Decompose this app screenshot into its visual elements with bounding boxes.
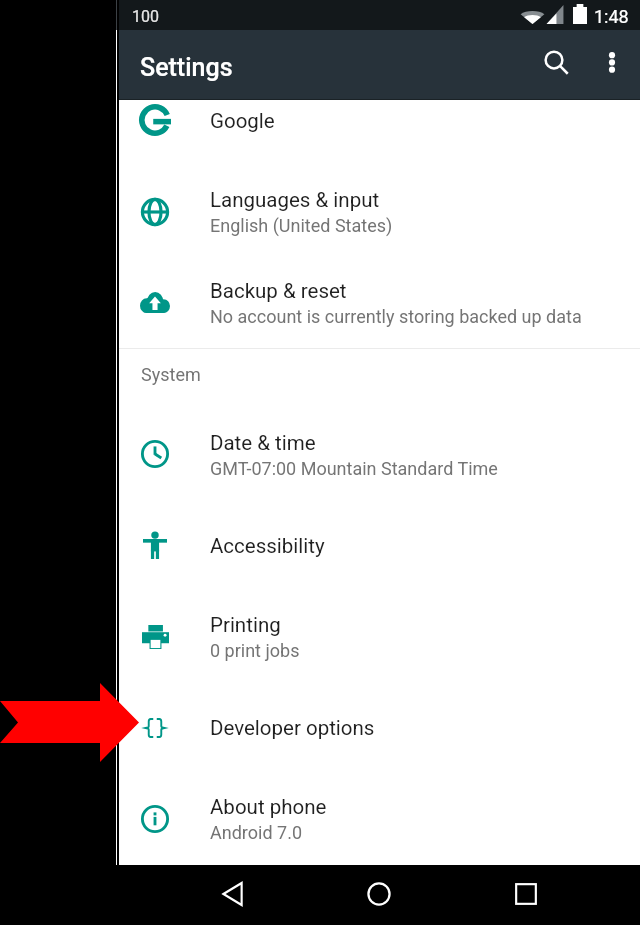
staticText: 0 print jobs	[210, 640, 300, 661]
button[interactable]	[119, 165, 640, 256]
button[interactable]	[119, 256, 640, 347]
staticText: Backup & reset	[210, 279, 347, 303]
staticText: No account is currently storing backed u…	[210, 306, 582, 327]
staticText: Accessibility	[210, 534, 325, 558]
button[interactable]	[119, 590, 640, 681]
staticText: Printing	[210, 613, 281, 637]
button[interactable]: Recent apps	[504, 872, 548, 916]
button[interactable]: More options	[588, 38, 636, 86]
button[interactable]	[119, 408, 640, 499]
staticText: About phone	[210, 795, 327, 819]
staticText: Developer options	[210, 716, 375, 740]
button[interactable]	[119, 681, 640, 772]
staticText: Google	[210, 109, 275, 133]
button[interactable]	[119, 499, 640, 590]
button[interactable]: Back	[211, 872, 255, 916]
staticText: Settings	[140, 53, 233, 82]
staticText: System	[141, 364, 201, 385]
button[interactable]	[119, 772, 640, 863]
staticText: Date & time	[210, 431, 316, 455]
staticText: Android 7.0	[210, 822, 302, 843]
staticText: English (United States)	[210, 215, 393, 236]
staticText: 1:48	[594, 6, 629, 27]
button[interactable]: Search	[532, 38, 580, 86]
button[interactable]	[119, 74, 640, 165]
button[interactable]: Home	[357, 872, 401, 916]
staticText: 100	[132, 7, 159, 26]
staticText: Languages & input	[210, 188, 380, 212]
staticText: GMT-07:00 Mountain Standard Time	[210, 458, 498, 479]
